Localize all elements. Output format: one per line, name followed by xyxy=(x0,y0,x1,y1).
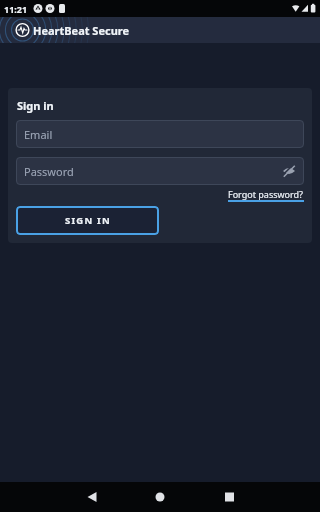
button[interactable]: Password xyxy=(16,157,304,185)
staticText: HeartBeat Secure xyxy=(33,23,130,38)
button[interactable]: Forgot password? xyxy=(228,188,304,202)
button[interactable] xyxy=(106,482,213,512)
staticText: Forgot password? xyxy=(228,188,304,200)
button[interactable] xyxy=(213,482,320,512)
button[interactable]: Email xyxy=(16,120,304,148)
staticText: 11:21 xyxy=(4,3,28,15)
staticText: Password xyxy=(24,164,74,179)
staticText: SIGN IN xyxy=(65,214,111,227)
staticText: Sign in xyxy=(17,98,54,113)
staticText: Email xyxy=(24,127,53,142)
button[interactable] xyxy=(0,482,106,512)
button[interactable]: SIGN IN xyxy=(16,206,159,235)
